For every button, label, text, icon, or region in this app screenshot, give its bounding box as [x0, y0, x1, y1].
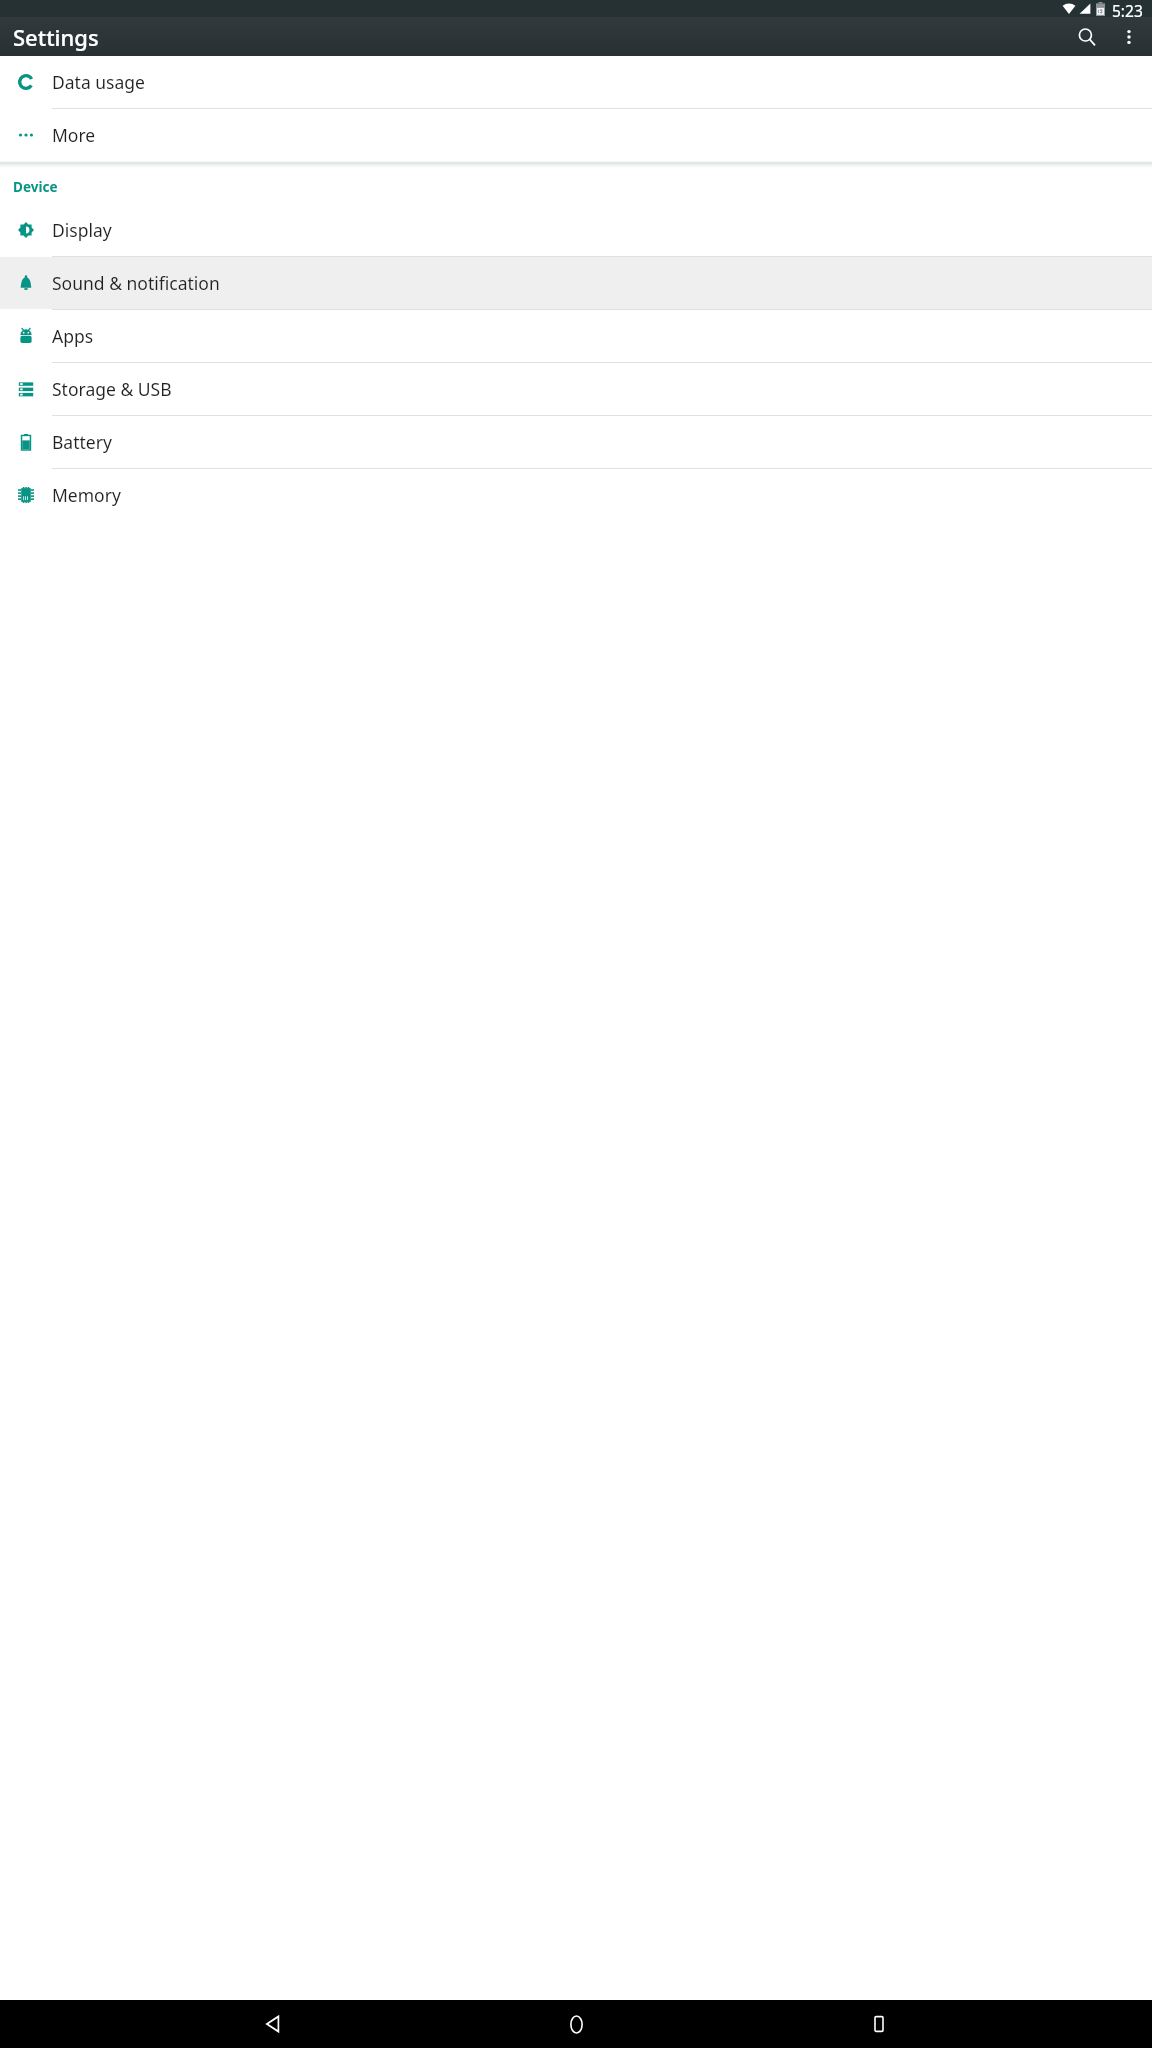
staticText: Device [13, 178, 58, 196]
button[interactable]: Display [0, 204, 1152, 256]
button[interactable]: Storage & USB [0, 363, 1152, 415]
staticText: Storage & USB [52, 377, 172, 401]
button[interactable]: Search [1065, 17, 1109, 56]
staticText: Settings [13, 22, 99, 52]
staticText: Battery [52, 430, 112, 454]
staticText: Data usage [52, 70, 145, 94]
button[interactable]: Back [243, 2000, 303, 2048]
staticText: Sound & notification [52, 271, 220, 295]
button[interactable]: Memory [0, 469, 1152, 521]
staticText: Memory [52, 483, 121, 507]
button[interactable]: Battery [0, 416, 1152, 468]
staticText: Apps [52, 324, 94, 348]
button[interactable]: Apps [0, 310, 1152, 362]
button[interactable]: More options [1109, 17, 1149, 56]
staticText: 5:23 [1112, 0, 1143, 17]
button[interactable]: Home [546, 2000, 606, 2048]
button[interactable]: More [0, 109, 1152, 161]
staticText: More [52, 123, 96, 147]
button[interactable]: Data usage [0, 56, 1152, 108]
button[interactable]: Recent apps [849, 2000, 909, 2048]
staticText: Display [52, 218, 112, 242]
button[interactable]: Sound & notification [0, 257, 1152, 309]
